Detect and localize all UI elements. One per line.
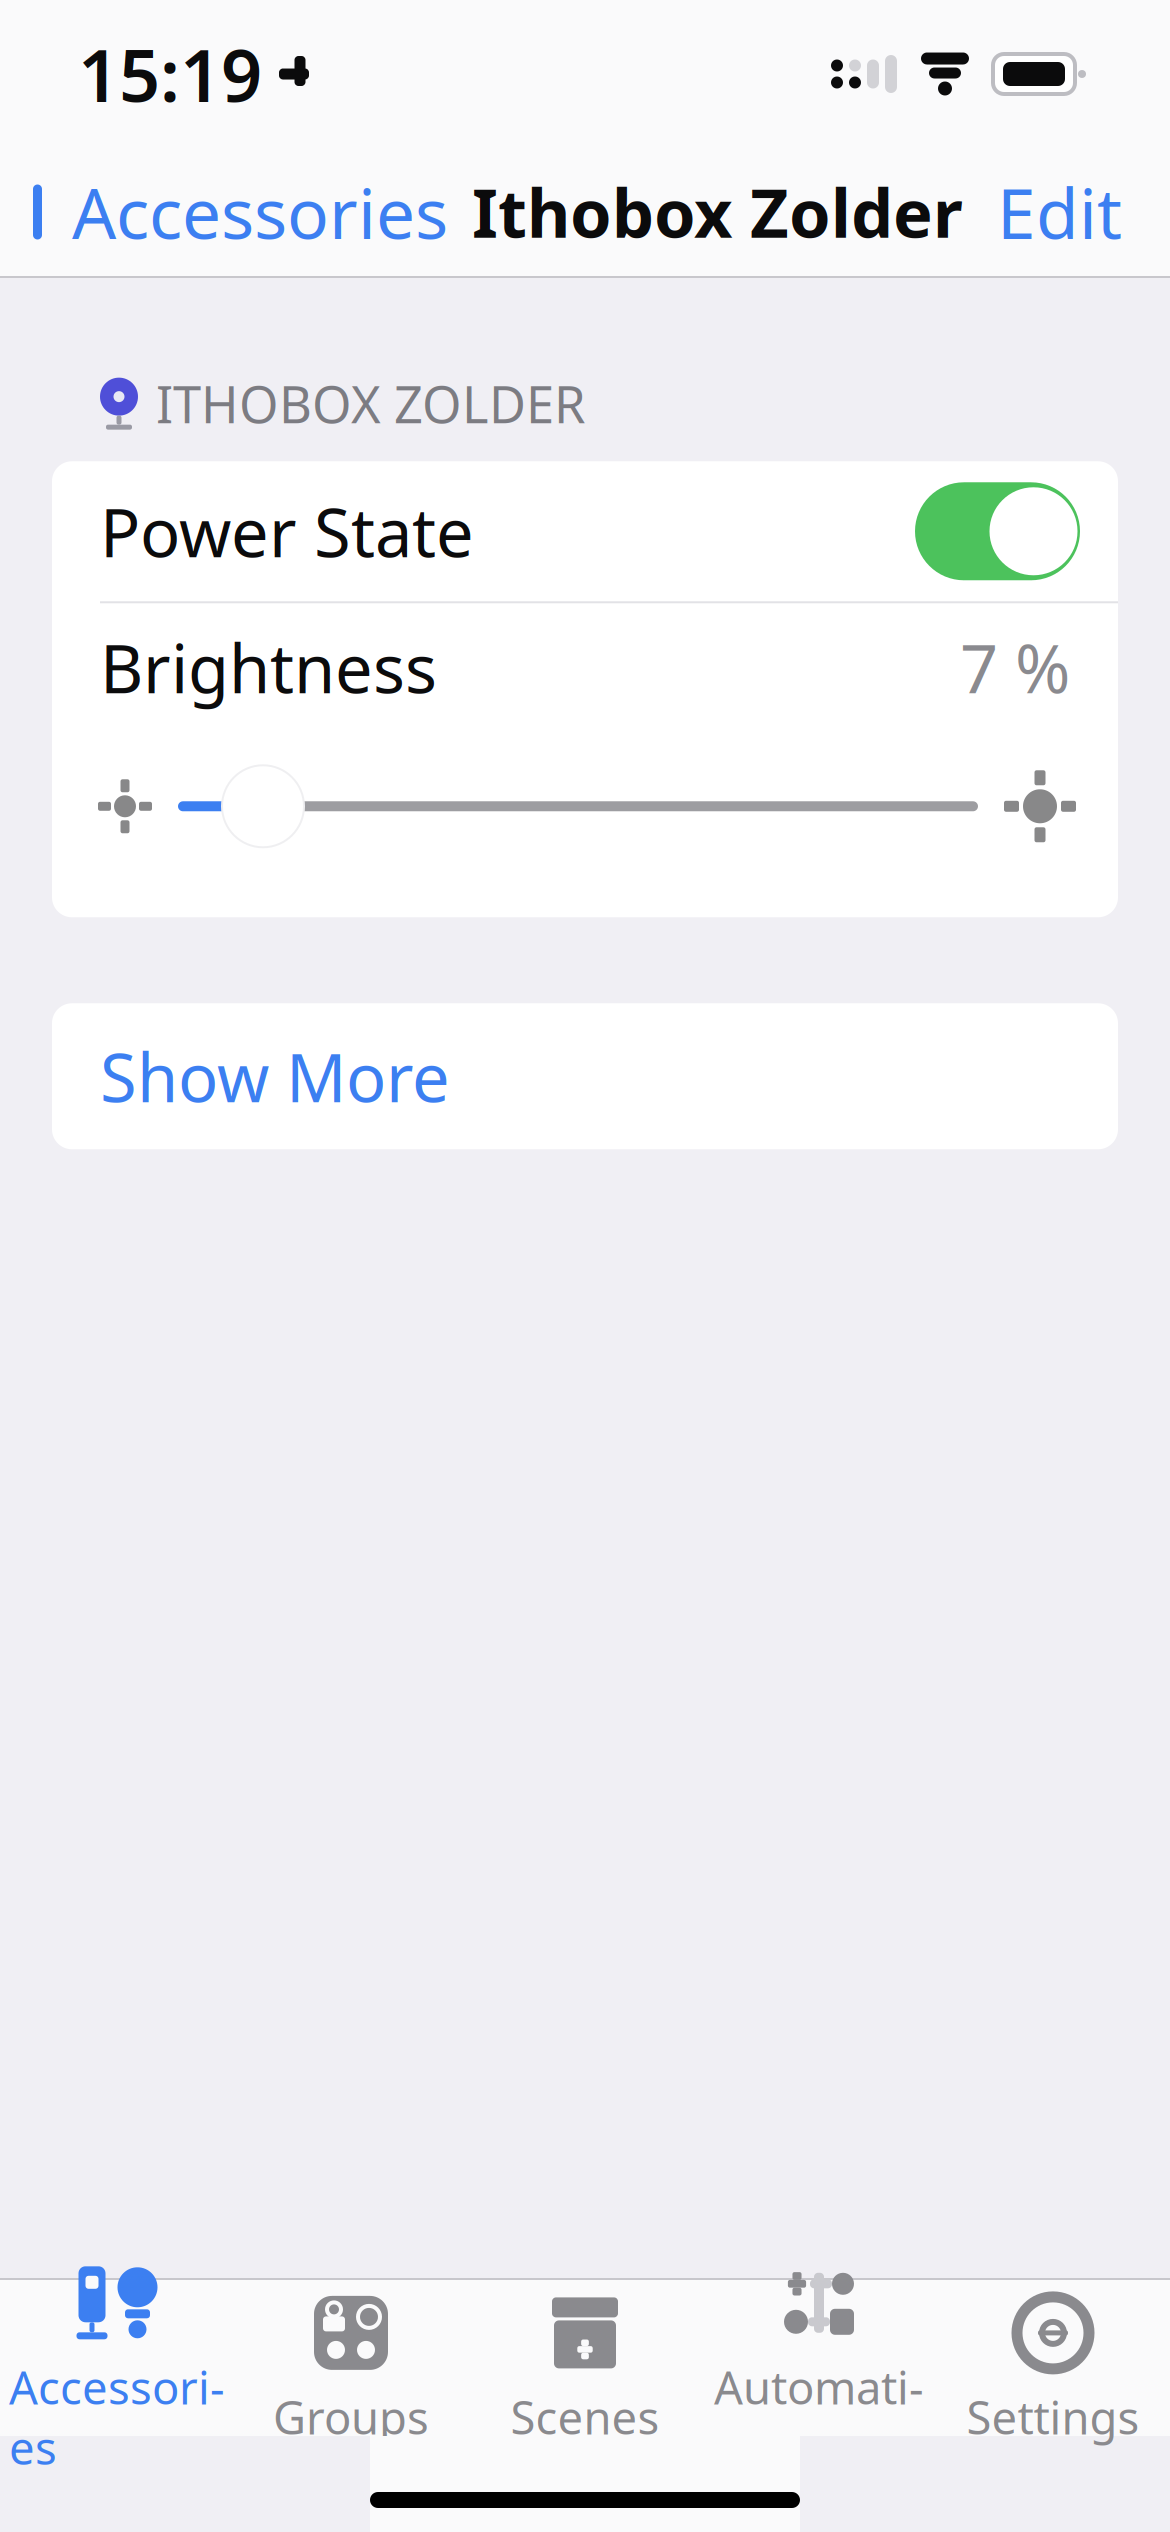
- staticText: Show More: [100, 1032, 450, 1120]
- button[interactable]: Scenes: [468, 2285, 702, 2453]
- staticText: Settings: [966, 2387, 1139, 2447]
- staticText: Power State: [100, 487, 474, 575]
- staticText: Scenes: [510, 2387, 659, 2447]
- button[interactable]: Groups: [234, 2285, 468, 2453]
- staticText: ITHOBOX ZOLDER: [156, 370, 586, 437]
- staticText: Edit: [997, 166, 1122, 258]
- button[interactable]: Accessories: [0, 2255, 234, 2483]
- staticText: Groups: [273, 2387, 429, 2447]
- button[interactable]: Automation: [702, 2255, 936, 2483]
- staticText: Accessories: [9, 2357, 225, 2477]
- staticText: Ithobox Zolder: [472, 168, 963, 256]
- staticText: Brightness: [100, 623, 437, 711]
- staticText: 7 %: [960, 623, 1070, 711]
- staticText: Automation: [714, 2357, 924, 2477]
- button[interactable]: Edit: [971, 152, 1148, 272]
- button[interactable]: Accessories: [0, 152, 448, 272]
- staticText: Accessories: [72, 166, 448, 258]
- button[interactable]: [915, 482, 1080, 580]
- button[interactable]: Show More: [52, 1003, 1118, 1149]
- button[interactable]: Settings: [936, 2285, 1170, 2453]
- staticText: 15:19: [78, 26, 262, 122]
